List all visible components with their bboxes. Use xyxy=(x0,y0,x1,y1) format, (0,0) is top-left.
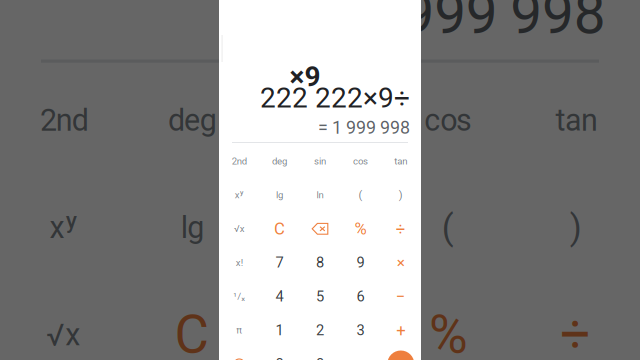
button[interactable]: 5 xyxy=(300,279,340,313)
button[interactable]: + xyxy=(381,313,421,347)
button[interactable]: 8 xyxy=(300,246,340,279)
button[interactable]: 1 xyxy=(259,313,300,347)
button[interactable]: History xyxy=(219,347,259,360)
button[interactable]: 1 xyxy=(259,313,300,347)
button[interactable]: 2nd xyxy=(219,144,259,178)
button[interactable]: deg xyxy=(259,144,300,178)
staticText: x! xyxy=(236,257,243,268)
button[interactable]: 4 xyxy=(259,279,300,313)
button[interactable]: 7 xyxy=(259,246,300,279)
button[interactable]: % xyxy=(340,212,381,246)
button[interactable]: 0 xyxy=(259,347,300,360)
button[interactable]: ) xyxy=(381,178,421,212)
staticText: 4 xyxy=(276,288,284,305)
button[interactable]: C xyxy=(259,212,300,246)
staticText: ÷ xyxy=(396,219,406,238)
button[interactable]: tan xyxy=(381,144,421,178)
button[interactable]: sin xyxy=(300,144,340,178)
button[interactable]: tan xyxy=(381,144,421,178)
button[interactable] xyxy=(381,347,421,360)
button[interactable]: 0 xyxy=(300,347,340,360)
button[interactable]: C xyxy=(259,212,300,246)
staticText: 0 xyxy=(316,355,324,360)
button[interactable]: Equals xyxy=(381,347,421,360)
button[interactable] xyxy=(300,212,340,246)
staticText: 4 xyxy=(276,288,284,305)
button[interactable]: 9 xyxy=(340,246,381,279)
staticText: 2nd xyxy=(232,156,247,167)
button[interactable]: 8 xyxy=(300,246,340,279)
staticText: 5 xyxy=(316,288,324,305)
staticText: sin xyxy=(314,156,326,167)
button[interactable]: History xyxy=(219,347,259,360)
button[interactable]: 9 xyxy=(340,246,381,279)
button[interactable]: 5 xyxy=(300,279,340,313)
staticText: ( xyxy=(358,189,362,201)
staticText: xʸ xyxy=(235,189,244,201)
button[interactable]: ÷ xyxy=(381,212,421,246)
button[interactable]: ¹/ₓ xyxy=(219,279,259,313)
button[interactable]: Backspace xyxy=(300,212,340,246)
button[interactable]: xʸ xyxy=(219,178,259,212)
button[interactable]: 7 xyxy=(259,246,300,279)
button[interactable]: 3 xyxy=(340,313,381,347)
button[interactable]: Backspace xyxy=(300,212,340,246)
staticText: π xyxy=(236,325,242,336)
staticText: x! xyxy=(236,257,243,268)
button[interactable]: Equals xyxy=(381,347,421,360)
button[interactable] xyxy=(381,347,421,360)
button[interactable]: − xyxy=(381,279,421,313)
staticText: 1 xyxy=(276,322,284,339)
button[interactable]: cos xyxy=(340,144,381,178)
button[interactable]: x! xyxy=(219,246,259,279)
staticText: 8 xyxy=(316,254,324,271)
button[interactable]: π xyxy=(219,313,259,347)
staticText: + xyxy=(396,320,405,340)
staticText: ×9 xyxy=(290,60,321,93)
button[interactable]: x! xyxy=(219,246,259,279)
button[interactable]: √x xyxy=(219,212,259,246)
button[interactable]: √x xyxy=(219,212,259,246)
staticText: deg xyxy=(272,156,287,167)
button[interactable]: π xyxy=(219,313,259,347)
button[interactable]: − xyxy=(381,279,421,313)
button[interactable]: cos xyxy=(340,144,381,178)
staticText: 1 xyxy=(276,322,284,339)
button[interactable]: 4 xyxy=(259,279,300,313)
button[interactable]: 6 xyxy=(340,279,381,313)
button[interactable]: ln xyxy=(300,178,340,212)
staticText: 0 xyxy=(276,355,284,360)
button[interactable]: ( xyxy=(340,178,381,212)
button[interactable] xyxy=(219,347,259,360)
staticText: = 1 999 998 xyxy=(318,117,410,138)
button[interactable]: 3 xyxy=(340,313,381,347)
button[interactable]: ÷ xyxy=(381,212,421,246)
button[interactable]: 2 xyxy=(300,313,340,347)
button[interactable]: ) xyxy=(381,178,421,212)
staticText: 0 xyxy=(276,355,284,360)
button[interactable]: 2nd xyxy=(219,144,259,178)
staticText: % xyxy=(354,219,366,238)
button[interactable]: + xyxy=(381,313,421,347)
button[interactable]: sin xyxy=(300,144,340,178)
button[interactable]: xʸ xyxy=(219,178,259,212)
button[interactable] xyxy=(219,347,259,360)
button[interactable]: ( xyxy=(340,178,381,212)
button[interactable]: deg xyxy=(259,144,300,178)
button[interactable]: ¹/ₓ xyxy=(219,279,259,313)
button[interactable]: % xyxy=(340,212,381,246)
button[interactable]: 2 xyxy=(300,313,340,347)
button[interactable]: × xyxy=(381,246,421,279)
button[interactable]: lg xyxy=(259,178,300,212)
staticText: 9 xyxy=(356,254,364,271)
button[interactable] xyxy=(300,212,340,246)
button[interactable]: 0 xyxy=(300,347,340,360)
button[interactable]: × xyxy=(381,246,421,279)
button[interactable]: 6 xyxy=(340,279,381,313)
button[interactable]: lg xyxy=(259,178,300,212)
button[interactable]: ln xyxy=(300,178,340,212)
button[interactable]: 0 xyxy=(259,347,300,360)
staticText: × xyxy=(397,254,405,272)
